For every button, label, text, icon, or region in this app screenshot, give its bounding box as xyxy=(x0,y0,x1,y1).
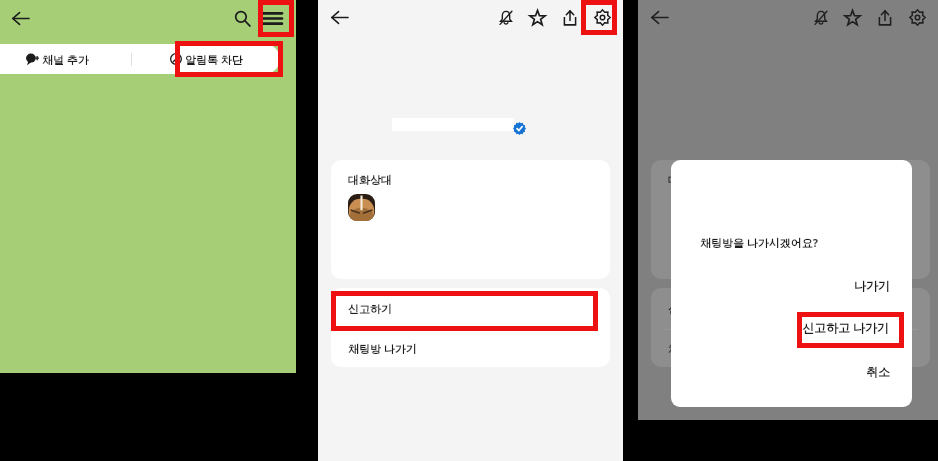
button[interactable]: 채널 추가 xyxy=(0,44,131,74)
staticText: 대화상대 xyxy=(348,173,392,187)
button[interactable]: 신고하기 xyxy=(651,288,930,329)
button[interactable]: 채팅방 나가기 xyxy=(651,330,930,367)
button[interactable]: Back xyxy=(5,3,35,33)
button[interactable]: 신고하기 xyxy=(331,288,610,329)
button[interactable]: Settings xyxy=(903,3,931,31)
button[interactable]: Share xyxy=(871,4,898,31)
button[interactable]: Settings xyxy=(588,3,616,31)
button[interactable]: 취소 xyxy=(671,357,912,386)
staticText: 신고하기 xyxy=(668,302,712,316)
button[interactable]: Menu xyxy=(257,3,287,33)
button[interactable]: Favorite xyxy=(839,4,866,31)
staticText: 채팅방 나가기 xyxy=(348,341,417,356)
staticText: 신고하고 나가기 xyxy=(802,319,890,335)
button[interactable]: 채팅방 나가기 xyxy=(331,330,610,367)
staticText: 알림톡 차단 xyxy=(185,52,243,67)
button[interactable]: 신고하고 나가기 xyxy=(671,312,912,342)
staticText: 신고하기 xyxy=(348,302,392,316)
button[interactable]: Back xyxy=(644,2,674,32)
button[interactable]: Favorite xyxy=(524,4,551,31)
button[interactable]: Search xyxy=(228,4,256,32)
staticText: 나가기 xyxy=(854,278,890,293)
button[interactable]: Mute notifications xyxy=(492,4,519,31)
button[interactable]: Mute notifications xyxy=(807,4,834,31)
button[interactable]: 나가기 xyxy=(671,271,912,300)
staticText: 취소 xyxy=(866,364,890,379)
staticText: 채팅방 나가기 xyxy=(668,341,737,356)
button[interactable]: Back xyxy=(324,2,354,32)
button[interactable]: 알림톡 차단 xyxy=(132,44,280,74)
staticText: 채널 추가 xyxy=(42,52,89,67)
staticText: 채팅방을 나가시겠어요? xyxy=(700,235,819,250)
staticText: 대화상대 xyxy=(668,173,712,187)
button[interactable]: Share xyxy=(556,4,583,31)
